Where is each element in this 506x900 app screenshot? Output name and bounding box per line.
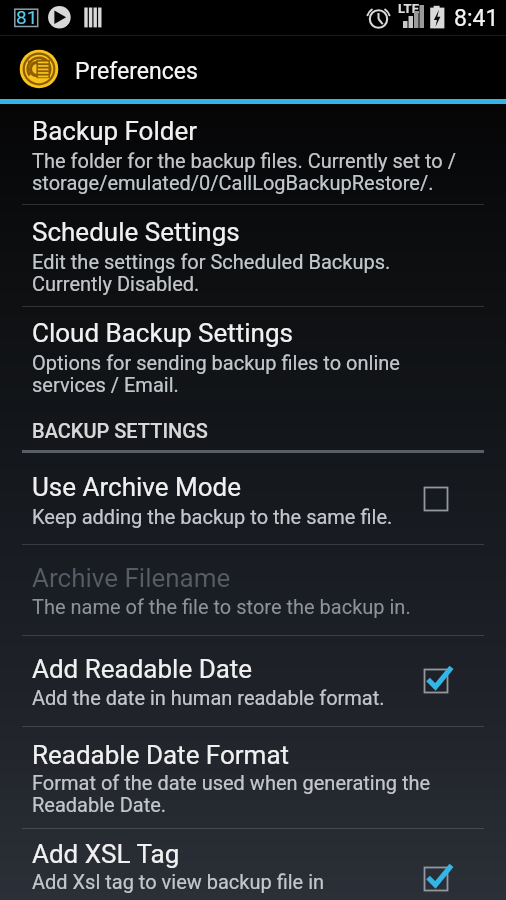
button[interactable]: Cloud Backup Settings: [0, 306, 506, 408]
staticText: Keep adding the backup to the same file.: [32, 505, 393, 528]
button[interactable]: Add Readable Date: [414, 659, 458, 703]
button[interactable]: Use Archive Mode: [0, 453, 506, 544]
staticText: BACKUP SETTINGS: [32, 419, 208, 442]
other: App icon: [19, 49, 61, 91]
button[interactable]: Archive Filename: [0, 545, 506, 635]
staticText: LTE: [398, 1, 419, 16]
button[interactable]: Add XSL Tag: [0, 829, 506, 900]
staticText: Backup Folder: [32, 116, 198, 146]
staticText: Archive Filename: [32, 563, 231, 593]
button[interactable]: Schedule Settings: [0, 204, 506, 306]
staticText: Add XSL Tag: [32, 839, 180, 869]
staticText: Cloud Backup Settings: [32, 318, 293, 348]
staticText: Schedule Settings: [32, 217, 240, 247]
staticText: 8:41: [454, 5, 499, 32]
staticText: Add the date in human readable format.: [32, 686, 385, 709]
button[interactable]: Add Readable Date: [0, 636, 506, 726]
button[interactable]: Add XSL Tag: [414, 857, 458, 900]
staticText: 81: [16, 6, 38, 28]
staticText: Add Xsl tag to view backup file in: [32, 870, 325, 893]
staticText: Add Readable Date: [32, 654, 253, 684]
button[interactable]: Use Archive Mode: [414, 477, 458, 521]
staticText: Edit the settings for Scheduled Backups.…: [32, 250, 391, 296]
staticText: Preferences: [75, 58, 198, 85]
button[interactable]: Backup Folder: [0, 104, 506, 204]
button[interactable]: Readable Date Format: [0, 727, 506, 828]
staticText: The name of the file to store the backup…: [32, 595, 411, 618]
staticText: Readable Date Format: [32, 740, 290, 770]
staticText: Use Archive Mode: [32, 472, 241, 502]
staticText: Options for sending backup files to onli…: [32, 351, 400, 397]
staticText: The folder for the backup files. Current…: [32, 149, 456, 195]
staticText: Format of the date used when generating …: [32, 771, 431, 817]
